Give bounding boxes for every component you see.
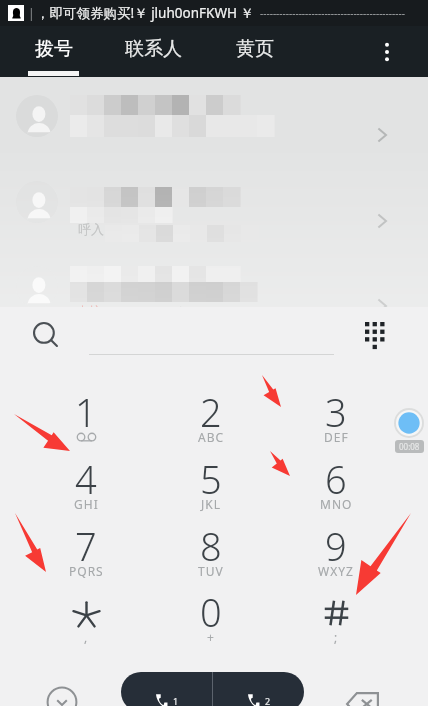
staticText: 呼入 [78,221,104,237]
staticText: 2 [200,386,222,438]
staticText: WXYZ [318,563,354,579]
button[interactable]: ; [288,575,384,649]
button[interactable]: 5 [163,442,259,516]
staticText: , [84,629,89,645]
staticText: 8 [200,520,222,572]
button[interactable]: More options [367,26,407,77]
button[interactable]: Backspace [338,680,386,706]
button[interactable]: 联系人 [108,26,198,72]
button[interactable]: 0 [163,575,259,649]
staticText: | [28,5,35,21]
staticText: 6 [325,453,347,505]
button[interactable] [0,95,428,181]
button[interactable]: Call with SIM 2 [213,672,304,706]
staticText: 黄页 [236,37,274,61]
staticText: JKL [201,496,221,512]
staticText: TUV [198,563,224,579]
staticText: PQRS [69,563,104,579]
staticText: GHI [74,496,99,512]
button[interactable]: 未接 [0,266,428,352]
button[interactable]: 黄页 [218,26,292,72]
button[interactable]: Screen recorder [394,408,424,438]
button[interactable]: 8 [163,509,259,583]
staticText: 4 [75,453,97,505]
staticText: 拨号 [35,37,73,61]
staticText: 00:08 [399,441,420,452]
staticText: ----------------------------------------… [260,6,405,20]
button[interactable]: 7 [38,509,134,583]
button[interactable]: 2 [163,375,259,449]
staticText: 2 [265,695,271,706]
button[interactable]: 3 [288,375,384,449]
button[interactable]: Search [24,313,68,357]
button[interactable]: Keypad [353,312,397,356]
button[interactable]: 9 [288,509,384,583]
staticText: 未接 [76,303,102,319]
button[interactable]: Call with SIM 1 [121,672,212,706]
staticText: 联系人 [125,37,182,61]
button[interactable]: Hide keypad [38,678,86,706]
staticText: 0 [200,586,222,638]
staticText: 7 [75,520,97,572]
staticText: + [207,629,215,645]
button[interactable]: 拨号 [12,26,96,72]
button[interactable]: 4 [38,442,134,516]
staticText: ABC [198,429,225,445]
staticText: 1 [173,695,179,706]
staticText: 1 [75,386,97,438]
button[interactable]: 呼入 [0,181,428,267]
staticText: 5 [200,453,222,505]
staticText: DEF [324,429,349,445]
staticText: MNO [320,496,353,512]
staticText: 9 [325,520,347,572]
staticText: ，即可领券购买!￥ jluh0onFKWH ￥ [36,4,254,22]
button[interactable]: , [38,575,134,649]
button[interactable]: 6 [288,442,384,516]
staticText: ; [334,629,339,645]
staticText: 3 [325,386,347,438]
button[interactable]: 1 [38,375,134,449]
